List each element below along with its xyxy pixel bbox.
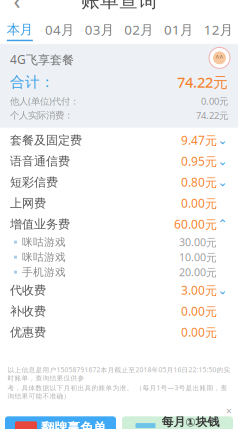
staticText: 咪咕游戏 [22,251,66,264]
staticText: 02月 [124,21,153,38]
button[interactable]: 本月 [0,15,40,43]
staticText: 3.00元 [181,282,217,298]
staticText: ⌃ [217,217,227,231]
staticText: 个人实际消费： [10,110,73,121]
button[interactable]: 免单 [5,416,116,429]
button[interactable]: 语音通信费 [10,151,228,172]
button[interactable]: 上网费 [10,193,228,214]
button[interactable]: 套餐及固定费 [10,130,228,151]
staticText: 语音通信费 [10,154,70,168]
staticText: 10.00元 [179,250,217,264]
staticText: 考，具体数据以下月初出具的账单为准。 （每月1号—3号是出账期，查询结果可能不准… [7,383,227,400]
staticText: ^^ [215,53,223,62]
staticText: 本月 [7,21,33,38]
button[interactable]: 每月①块钱 [122,416,233,429]
staticText: 74.22元 [177,72,228,92]
button[interactable]: 03月 [79,15,119,44]
staticText: ⌄ [217,154,227,168]
staticText: 账单查询 [81,0,157,12]
staticText: 手机游戏 [22,266,66,279]
button[interactable]: 优惠费 [10,322,228,343]
staticText: ‹ [13,0,20,16]
staticText: 上网费 [10,196,46,210]
staticText: 以上信息是用户15058791672本月截止至2018年05月16日22:15:… [7,365,230,382]
staticText: ✕ [225,407,232,416]
button[interactable]: Close ad [223,406,235,416]
staticText: 9.47元 [181,132,217,148]
button[interactable]: 增值业务费 [10,214,228,235]
staticText: 0.00元 [181,303,217,319]
staticText: ⌄ [217,283,227,297]
button[interactable]: 01月 [159,15,198,44]
staticText: ⌄ [217,175,227,189]
staticText: 优惠费 [10,325,46,339]
staticText: 每月①块钱 [161,414,219,429]
staticText: 0.80元 [181,174,217,190]
staticText: 咪咕游戏 [22,236,66,249]
button[interactable]: 短彩信费 [10,172,228,193]
staticText: ⌄ [217,133,227,147]
button[interactable]: 02月 [119,15,159,44]
button[interactable]: 12月 [198,15,238,44]
staticText: 增值业务费 [10,217,70,231]
staticText: 4G飞享套餐 [10,51,74,67]
staticText: 04月 [45,21,74,38]
staticText: 0.00元 [181,195,217,211]
staticText: 60.00元 [174,216,217,232]
button[interactable]: 补收费 [10,301,228,322]
staticText: 翻牌赢免单 [41,420,106,429]
staticText: 0.95元 [181,153,217,169]
staticText: 30.00元 [179,235,217,249]
staticText: 12月 [204,21,233,38]
staticText: 74.22元 [196,109,228,122]
staticText: 0.00元 [201,95,228,107]
staticText: 套餐及固定费 [10,133,82,147]
button[interactable]: Back [0,0,34,15]
staticText: 01月 [164,21,193,38]
button[interactable]: 代收费 [10,280,228,301]
staticText: 短彩信费 [10,175,58,189]
staticText: 代收费 [10,283,46,297]
staticText: 20.00元 [179,265,217,279]
staticText: 0.00元 [181,324,217,340]
staticText: 补收费 [10,304,46,318]
staticText: 他人(单位)代付： [10,95,79,107]
staticText: 合计： [10,73,55,91]
staticText: 03月 [85,21,114,38]
button[interactable]: 04月 [40,15,79,44]
